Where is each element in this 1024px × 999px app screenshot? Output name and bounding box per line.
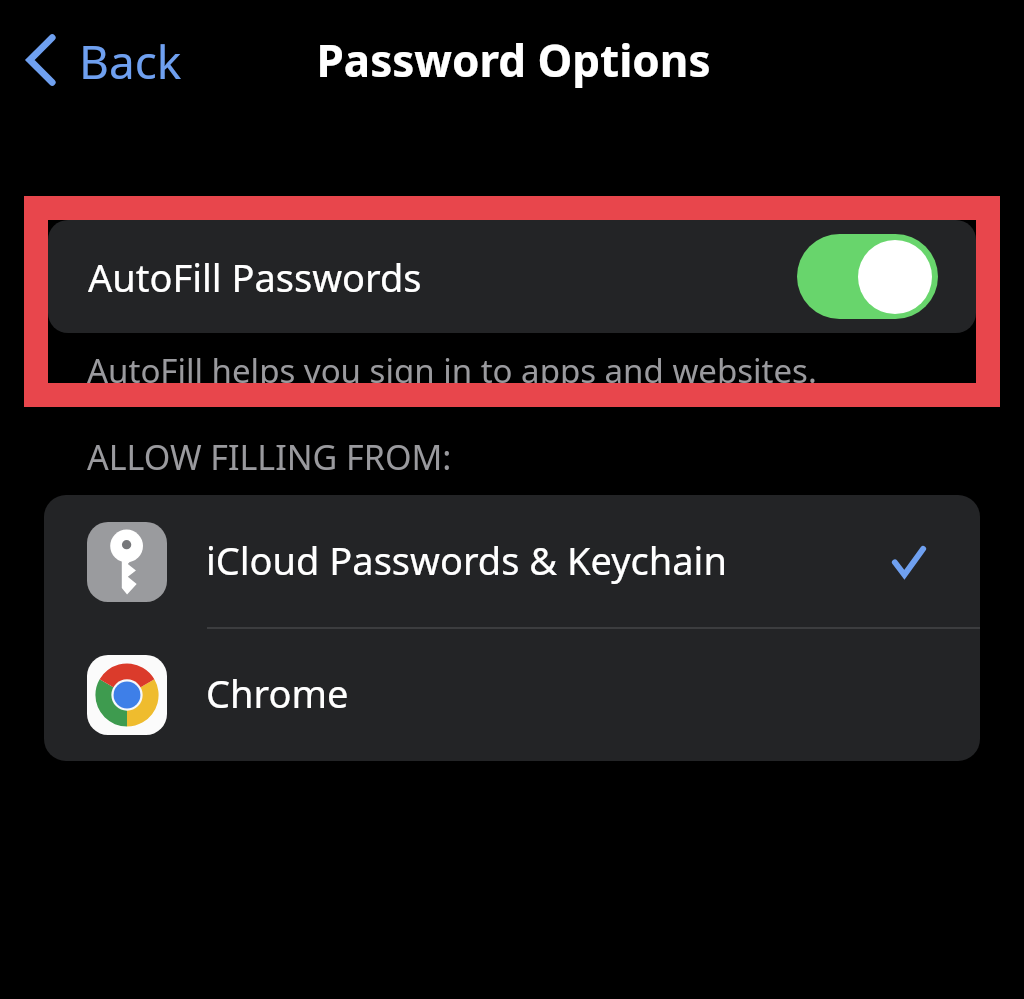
staticText: AutoFill helps you sign in to apps and w… bbox=[87, 348, 817, 393]
button[interactable]: AutoFill Passwords bbox=[48, 220, 976, 333]
button[interactable]: AutoFill Passwords toggle bbox=[797, 234, 938, 319]
staticText: Chrome bbox=[206, 667, 349, 719]
staticText: ALLOW FILLING FROM: bbox=[87, 434, 452, 480]
staticText: Password Options bbox=[316, 30, 711, 90]
staticText: Back bbox=[79, 30, 182, 93]
button[interactable]: Chrome bbox=[44, 628, 980, 761]
staticText: AutoFill Passwords bbox=[88, 251, 422, 303]
other: Selected bbox=[886, 542, 926, 582]
button[interactable]: iCloud Passwords & Keychain bbox=[44, 495, 980, 628]
button[interactable]: Back bbox=[16, 22, 190, 98]
staticText: iCloud Passwords & Keychain bbox=[206, 534, 727, 586]
